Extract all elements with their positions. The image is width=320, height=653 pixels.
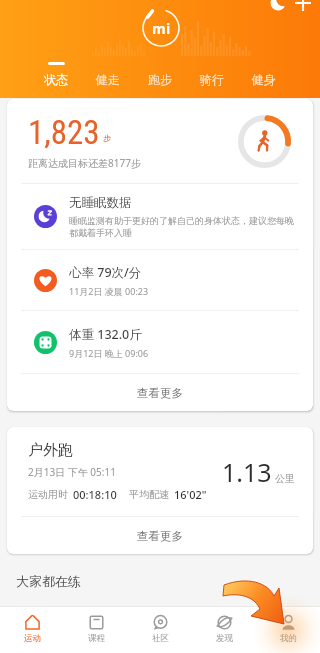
button[interactable]: 户外跑 bbox=[7, 427, 313, 516]
staticText: 我的 bbox=[280, 633, 297, 644]
staticText: 查看更多 bbox=[137, 529, 183, 543]
button[interactable]: 跑步 bbox=[134, 62, 186, 87]
button[interactable]: 骑行 bbox=[186, 62, 238, 87]
staticText: 1,823 bbox=[28, 113, 100, 152]
staticText: 运动 bbox=[24, 633, 41, 644]
staticText: 睡眠监测有助于更好的了解自己的身体状态，建议您每晚都戴着手环入睡 bbox=[69, 215, 296, 239]
staticText: 骑行 bbox=[200, 72, 224, 87]
button[interactable]: 体重 132.0斤 bbox=[7, 311, 313, 373]
button[interactable]: 健身 bbox=[238, 62, 290, 87]
staticText: 平均配速 bbox=[129, 488, 169, 501]
staticText: 无睡眠数据 bbox=[69, 195, 132, 211]
staticText: 社区 bbox=[152, 633, 169, 644]
staticText: 公里 bbox=[275, 472, 295, 485]
staticText: 健身 bbox=[252, 72, 276, 87]
button[interactable]: 心率 79次/分 bbox=[7, 250, 313, 310]
button[interactable]: 运动 bbox=[0, 611, 64, 648]
button[interactable]: 健走 bbox=[82, 62, 134, 87]
staticText: 16'02" bbox=[174, 487, 207, 502]
staticText: 00:18:10 bbox=[73, 487, 117, 502]
button[interactable]: 无睡眠数据 bbox=[7, 184, 313, 249]
button[interactable]: 发现 bbox=[192, 611, 256, 648]
staticText: 发现 bbox=[216, 633, 233, 644]
button[interactable]: 大家都在练 bbox=[0, 571, 320, 589]
button[interactable]: 状态 bbox=[30, 62, 82, 87]
button[interactable]: 我的 bbox=[256, 611, 320, 648]
staticText: 步 bbox=[103, 133, 111, 143]
staticText: 户外跑 bbox=[28, 441, 73, 460]
staticText: 体重 132.0斤 bbox=[69, 326, 142, 343]
staticText: 距离达成目标还差8177步 bbox=[28, 156, 141, 170]
staticText: 健走 bbox=[96, 72, 120, 87]
staticText: 查看更多 bbox=[137, 386, 183, 400]
button[interactable]: 课程 bbox=[64, 611, 128, 648]
button[interactable]: 查看更多 bbox=[7, 517, 313, 554]
staticText: mi bbox=[152, 19, 171, 38]
button[interactable]: Sleep mode bbox=[269, 0, 287, 12]
button[interactable]: Add bbox=[293, 0, 313, 13]
staticText: 课程 bbox=[88, 633, 105, 644]
staticText: 跑步 bbox=[148, 72, 172, 87]
staticText: 运动用时 bbox=[28, 488, 68, 501]
staticText: 心率 79次/分 bbox=[69, 264, 142, 281]
staticText: 1.13 bbox=[222, 455, 272, 489]
staticText: 大家都在练 bbox=[16, 573, 81, 589]
staticText: 状态 bbox=[44, 72, 68, 87]
staticText: 9月12日 晚上 09:06 bbox=[69, 347, 149, 359]
button[interactable]: 查看更多 bbox=[7, 374, 313, 411]
button[interactable]: 社区 bbox=[128, 611, 192, 648]
staticText: 2月13日 下午 05:11 bbox=[28, 465, 116, 479]
staticText: 11月2日 凌晨 00:23 bbox=[69, 285, 149, 297]
